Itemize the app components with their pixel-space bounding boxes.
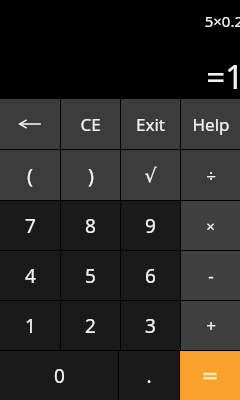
button[interactable]: -: [181, 251, 240, 300]
staticText: 7: [25, 213, 36, 239]
staticText: 0: [54, 363, 65, 389]
button[interactable]: √: [121, 150, 180, 200]
staticText: (: [27, 162, 33, 189]
button[interactable]: 6: [121, 251, 180, 300]
button[interactable]: 8: [61, 201, 120, 250]
staticText: ×: [206, 216, 215, 236]
staticText: 5: [85, 263, 96, 289]
staticText: 1: [25, 313, 36, 339]
button[interactable]: ×: [181, 201, 240, 250]
staticText: 4: [25, 263, 36, 289]
staticText: 9: [145, 213, 156, 239]
staticText: CE: [80, 113, 101, 136]
button[interactable]: ÷: [181, 150, 240, 200]
button[interactable]: ): [61, 150, 120, 200]
staticText: 3: [145, 313, 156, 339]
button[interactable]: Backspace: [0, 99, 60, 149]
staticText: +: [206, 314, 216, 337]
staticText: 2: [85, 313, 96, 339]
staticText: =1: [206, 54, 240, 99]
button[interactable]: 2: [61, 301, 120, 350]
button[interactable]: 7: [0, 201, 60, 250]
staticText: 6: [145, 263, 156, 289]
button[interactable]: .: [119, 351, 179, 400]
staticText: ): [88, 162, 94, 189]
button[interactable]: 3: [121, 301, 180, 350]
button[interactable]: 0: [0, 351, 118, 400]
button[interactable]: CE: [61, 99, 120, 149]
staticText: .: [146, 363, 152, 389]
staticText: √: [144, 164, 157, 186]
button[interactable]: Equals: [180, 351, 240, 400]
button[interactable]: (: [0, 150, 60, 200]
staticText: 8: [85, 213, 96, 239]
staticText: 5×0.2: [204, 11, 240, 31]
button[interactable]: 4: [0, 251, 60, 300]
staticText: ÷: [206, 164, 216, 187]
button[interactable]: +: [181, 301, 240, 350]
staticText: Help: [192, 113, 230, 136]
button[interactable]: 1: [0, 301, 60, 350]
button[interactable]: 5: [61, 251, 120, 300]
staticText: -: [208, 264, 214, 287]
button[interactable]: Help: [181, 99, 240, 149]
button[interactable]: 9: [121, 201, 180, 250]
button[interactable]: Exit: [121, 99, 180, 149]
staticText: Exit: [136, 113, 165, 136]
